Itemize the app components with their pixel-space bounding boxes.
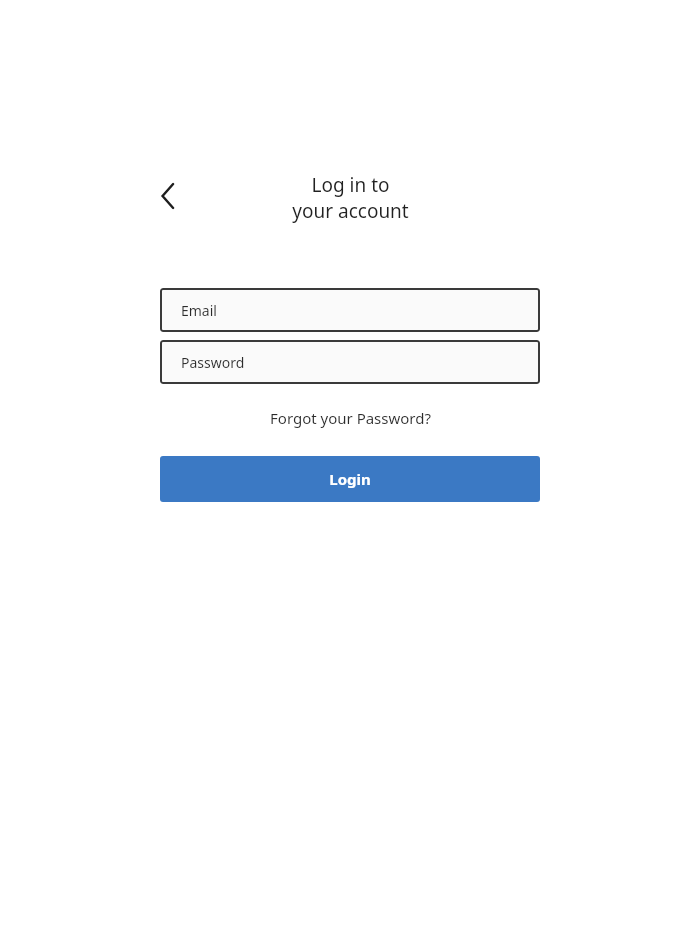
button[interactable]: Back bbox=[150, 178, 186, 214]
staticText: Log in to bbox=[311, 172, 390, 198]
staticText: Login bbox=[329, 469, 371, 489]
staticText: your account bbox=[292, 198, 409, 224]
button[interactable]: Forgot your Password? bbox=[264, 404, 437, 432]
staticText: Forgot your Password? bbox=[270, 408, 431, 428]
button[interactable]: Password bbox=[160, 340, 540, 384]
staticText: Password bbox=[181, 353, 245, 372]
button[interactable]: Login bbox=[160, 456, 540, 502]
button[interactable]: Email bbox=[160, 288, 540, 332]
staticText: Email bbox=[181, 301, 217, 320]
